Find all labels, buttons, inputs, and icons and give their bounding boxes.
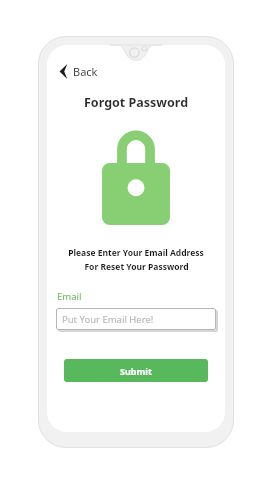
button[interactable]: Submit (64, 359, 208, 382)
button[interactable]: Back (56, 62, 101, 81)
staticText: Forgot Password (84, 94, 189, 111)
staticText: Please Enter Your Email Address (68, 247, 204, 259)
button[interactable]: Put Your Email Here! (56, 308, 216, 330)
staticText: Submit (120, 365, 152, 377)
staticText: For Reset Your Password (84, 261, 189, 273)
staticText: Back (73, 64, 98, 79)
staticText: Put Your Email Here! (62, 313, 154, 326)
staticText: Email (57, 290, 82, 303)
